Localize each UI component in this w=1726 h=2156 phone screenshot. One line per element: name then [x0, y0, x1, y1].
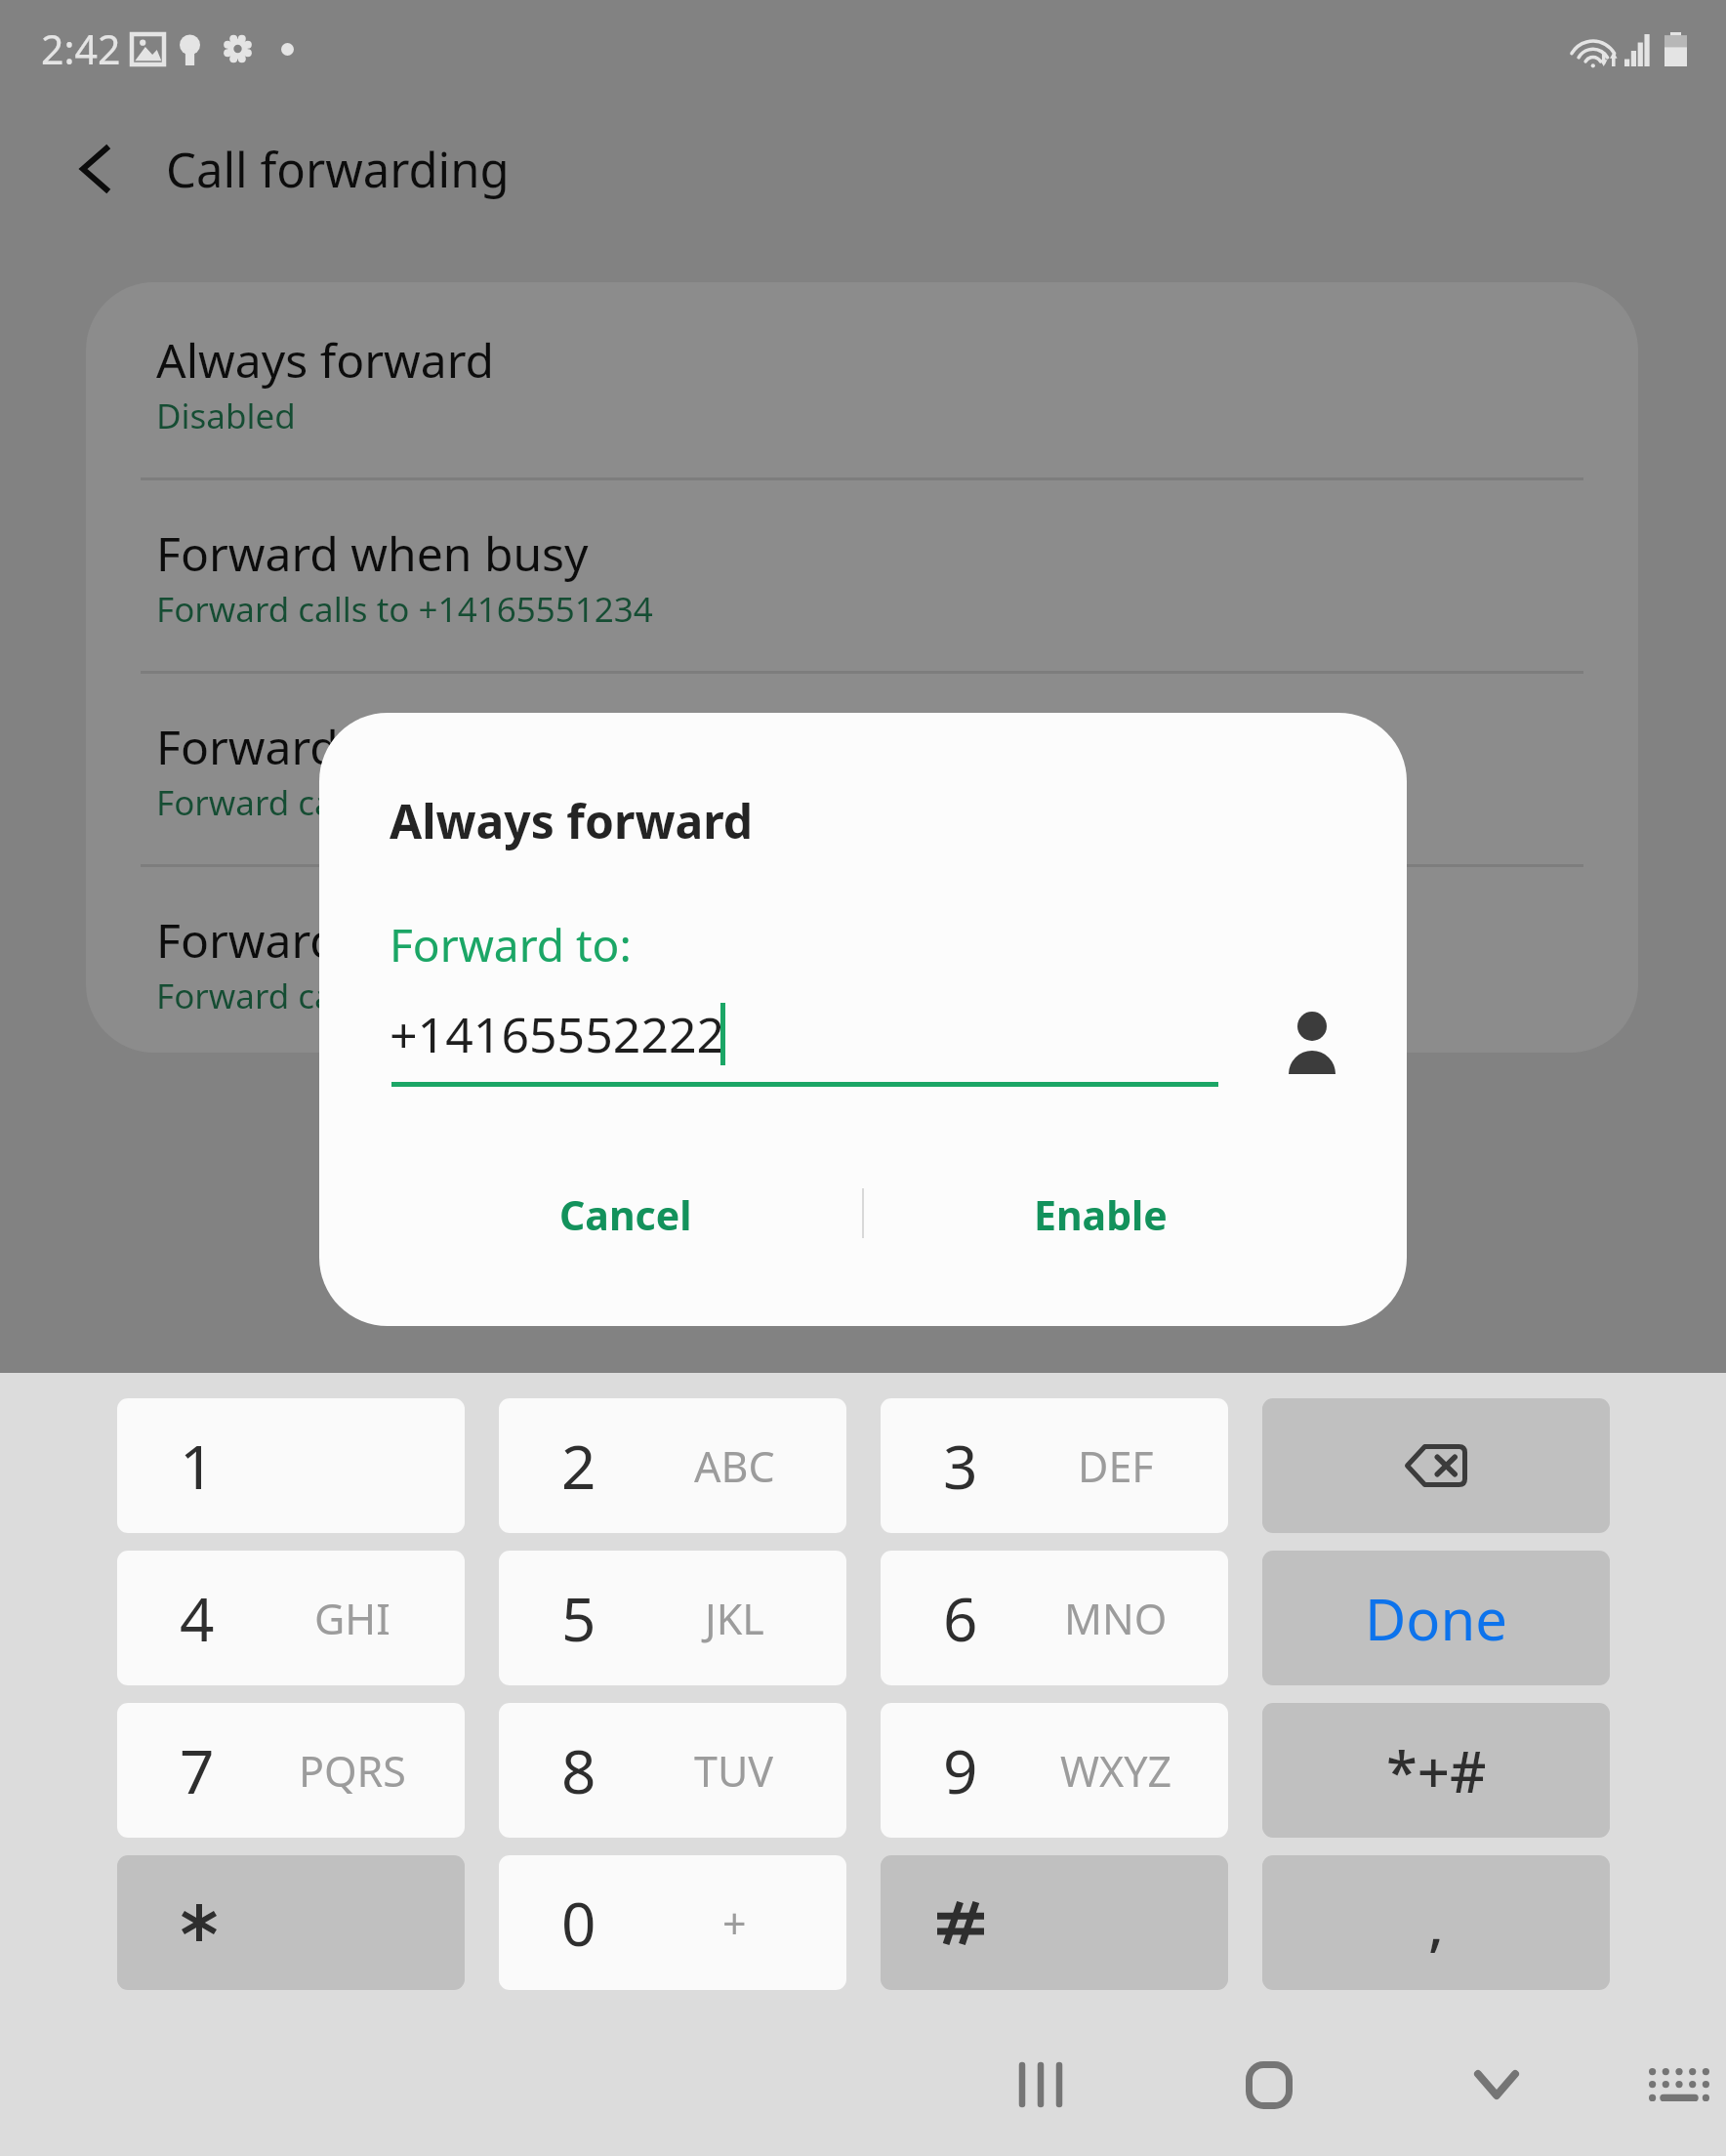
button[interactable]: Switch keyboard	[1611, 2016, 1726, 2153]
button[interactable]: 0	[499, 1855, 846, 1990]
button[interactable]: 6	[881, 1551, 1228, 1685]
staticText: Cancel	[559, 1187, 692, 1242]
button[interactable]: Always forward	[86, 282, 1638, 476]
staticText: 2	[561, 1425, 596, 1507]
staticText: Forward when busy	[156, 521, 589, 585]
staticText: Forward calls to +14165551234	[156, 586, 653, 633]
button[interactable]: Home	[1201, 2016, 1337, 2153]
button[interactable]: Choose contact	[1253, 983, 1371, 1100]
button[interactable]: 2	[499, 1398, 846, 1533]
staticText: Forward calls to +14165551234	[156, 973, 653, 1019]
button[interactable]: Star	[117, 1855, 465, 1990]
staticText: DEF	[1078, 1437, 1154, 1495]
button[interactable]: Forward when busy	[86, 476, 1638, 669]
staticText: Forward to:	[390, 914, 632, 975]
button[interactable]: Enable	[863, 1146, 1338, 1283]
button[interactable]: *+#	[1262, 1703, 1610, 1838]
staticText: Call forwarding	[166, 137, 510, 202]
staticText: Always forward	[390, 789, 754, 852]
button[interactable]: Pound	[881, 1855, 1228, 1990]
staticText: 8	[561, 1729, 596, 1811]
button[interactable]: 8	[499, 1703, 846, 1838]
staticText: 9	[943, 1729, 978, 1811]
staticText: 6	[943, 1577, 978, 1659]
button[interactable]: 5	[499, 1551, 846, 1685]
button[interactable]: Done	[1262, 1551, 1610, 1685]
staticText: MNO	[1064, 1590, 1168, 1647]
staticText: 4	[180, 1577, 215, 1659]
staticText: +14165552222	[390, 1001, 725, 1067]
button[interactable]: Hide keyboard	[1428, 2016, 1565, 2153]
staticText: Always forward	[156, 328, 495, 392]
button[interactable]: ,	[1262, 1855, 1610, 1990]
button[interactable]: Forward when unanswered	[86, 669, 1638, 862]
button[interactable]: Cancel	[388, 1146, 863, 1283]
staticText: 5	[561, 1577, 596, 1659]
staticText: +	[722, 1894, 747, 1952]
staticText: Disabled	[156, 393, 296, 439]
staticText: ABC	[694, 1437, 775, 1495]
staticText: Done	[1365, 1580, 1507, 1657]
staticText: Forward when unanswered	[156, 715, 758, 778]
button[interactable]: 7	[117, 1703, 465, 1838]
staticText: TUV	[694, 1742, 774, 1800]
button[interactable]: 4	[117, 1551, 465, 1685]
staticText: Forward calls to +14165551234	[156, 779, 653, 826]
button[interactable]: Backspace	[1262, 1398, 1610, 1533]
staticText: *+#	[1386, 1732, 1487, 1809]
staticText: 1	[180, 1425, 215, 1507]
staticText: GHI	[314, 1590, 390, 1647]
button[interactable]: Forward when unreachable	[86, 862, 1638, 1053]
staticText: Enable	[1034, 1187, 1168, 1242]
button[interactable]: 1	[117, 1398, 465, 1533]
button[interactable]: 9	[881, 1703, 1228, 1838]
staticText: 7	[180, 1729, 215, 1811]
button[interactable]: Back	[41, 115, 148, 223]
staticText: JKL	[705, 1590, 764, 1647]
staticText: 0	[561, 1882, 596, 1964]
staticText: Forward when unreachable	[156, 908, 759, 972]
staticText: WXYZ	[1060, 1742, 1172, 1800]
staticText: 2:42	[41, 21, 121, 76]
staticText: ,	[1428, 1885, 1444, 1962]
button[interactable]: 3	[881, 1398, 1228, 1533]
button[interactable]: Recents	[972, 2016, 1109, 2153]
staticText: PQRS	[299, 1742, 406, 1800]
staticText: 3	[943, 1425, 978, 1507]
